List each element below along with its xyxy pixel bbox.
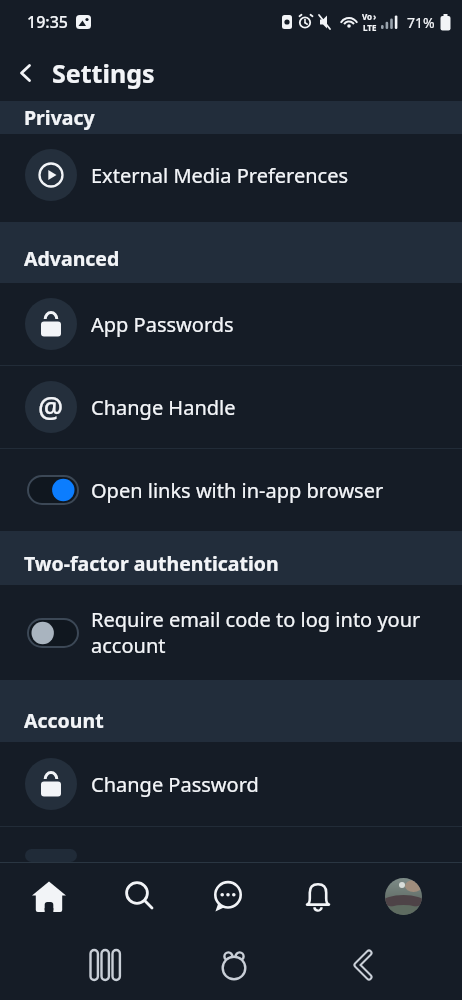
staticText: Advanced: [24, 245, 120, 272]
staticText: @: [38, 388, 64, 426]
staticText: Change Handle: [91, 394, 236, 421]
button[interactable]: Change Password: [0, 742, 462, 826]
staticText: App Passwords: [91, 311, 234, 338]
button[interactable]: [81, 941, 129, 989]
staticText: LTE: [363, 22, 377, 33]
button[interactable]: App Passwords: [0, 283, 462, 365]
staticText: External Media Preferences: [91, 162, 349, 189]
staticText: Privacy: [24, 104, 95, 131]
button[interactable]: External Media Preferences: [0, 134, 462, 216]
staticText: Change Password: [91, 771, 259, 798]
staticText: Open links with in-app browser: [91, 477, 384, 504]
staticText: Account: [24, 707, 104, 734]
staticText: Vo ›: [362, 11, 377, 22]
staticText: Settings: [52, 56, 155, 90]
button[interactable]: Open links with in-app browser: [0, 449, 462, 531]
button[interactable]: @: [0, 366, 462, 448]
button[interactable]: [186, 863, 278, 930]
button[interactable]: [210, 941, 258, 989]
button[interactable]: [93, 863, 186, 930]
button[interactable]: Require email code to log into your acco…: [0, 585, 462, 680]
button[interactable]: [339, 941, 387, 989]
staticText: Require email code to log into your acco…: [91, 606, 421, 659]
button[interactable]: [278, 863, 370, 930]
button[interactable]: [370, 863, 462, 930]
button[interactable]: [0, 863, 93, 930]
staticText: 71%: [407, 13, 435, 32]
button[interactable]: [8, 55, 44, 91]
staticText: Two-factor authentication: [24, 550, 279, 577]
staticText: 19:35: [27, 11, 68, 33]
